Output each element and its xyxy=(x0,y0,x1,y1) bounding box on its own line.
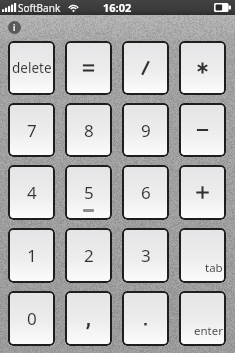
staticText: 5 xyxy=(84,181,94,204)
other: Battery xyxy=(214,3,231,12)
staticText: 2 xyxy=(84,244,94,267)
button[interactable]: 6 xyxy=(122,165,169,220)
button[interactable]: 8 xyxy=(65,103,112,157)
staticText: 9 xyxy=(141,119,151,142)
staticText: 1 xyxy=(27,244,37,267)
staticText: 7 xyxy=(27,119,37,142)
button[interactable]: 4 xyxy=(8,165,55,220)
staticText: delete xyxy=(12,59,51,77)
button[interactable]: 0 xyxy=(8,291,55,346)
button[interactable]: 9 xyxy=(122,103,169,157)
staticText: SoftBank xyxy=(18,1,61,15)
button[interactable] xyxy=(122,41,169,95)
button[interactable]: enter xyxy=(179,291,226,346)
staticText: enter xyxy=(194,323,223,339)
button[interactable]: 3 xyxy=(122,228,169,283)
button[interactable]: Info xyxy=(8,21,21,34)
staticText: i xyxy=(13,22,16,34)
staticText: 6 xyxy=(141,181,151,204)
button[interactable]: tab xyxy=(179,228,226,283)
button[interactable]: delete xyxy=(8,41,55,95)
button[interactable]: 2 xyxy=(65,228,112,283)
button[interactable] xyxy=(65,291,112,346)
button[interactable] xyxy=(179,41,226,95)
staticText: 16:02 xyxy=(103,0,132,15)
button[interactable] xyxy=(179,165,226,220)
button[interactable] xyxy=(65,41,112,95)
button[interactable]: 5 xyxy=(65,165,112,220)
staticText: 0 xyxy=(27,307,37,330)
other: Wi-Fi xyxy=(68,3,79,12)
button[interactable] xyxy=(179,103,226,157)
button[interactable]: 1 xyxy=(8,228,55,283)
button[interactable]: 7 xyxy=(8,103,55,157)
staticText: 8 xyxy=(84,119,94,142)
staticText: 4 xyxy=(27,181,37,204)
button[interactable] xyxy=(122,291,169,346)
staticText: 3 xyxy=(141,244,151,267)
staticText: tab xyxy=(205,260,223,276)
other: Signal strength xyxy=(2,3,17,12)
